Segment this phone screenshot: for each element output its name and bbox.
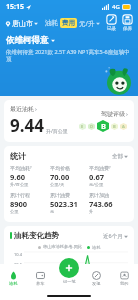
staticText: 9.60 [10, 172, 25, 182]
staticText: 15:15 [6, 2, 24, 12]
button[interactable]: 发现 [82, 264, 110, 292]
button[interactable]: 近6个月 [103, 232, 128, 240]
button[interactable]: Add [59, 258, 79, 278]
staticText: 累计行程 [10, 192, 30, 198]
button[interactable]: 油耗 [0, 264, 27, 292]
staticText: 0.67 [89, 172, 104, 182]
staticText: 743.66 [89, 199, 113, 209]
staticText: 发现 [92, 281, 101, 286]
button[interactable]: 养车 [27, 264, 54, 292]
staticText: 平均油费 [89, 165, 109, 171]
staticText: 累计加油 [89, 192, 109, 198]
staticText: ? [109, 165, 111, 170]
staticText: 唐山市 [12, 19, 33, 28]
staticText: 全部 [112, 153, 123, 160]
staticText: 油耗 [45, 19, 58, 27]
button[interactable]: 费用 [62, 19, 75, 27]
staticText: 元 [50, 209, 55, 214]
staticText: ? [30, 165, 32, 170]
staticText: 我的 [120, 281, 129, 286]
staticText: 保养 [123, 26, 132, 32]
staticText: 元/升 [79, 19, 95, 28]
button[interactable]: Maintenance [122, 14, 133, 32]
staticText: B [101, 121, 106, 131]
staticText: › [126, 110, 128, 118]
staticText: 统计 [10, 151, 26, 161]
staticText: 油耗 [9, 281, 18, 286]
staticText: 70.00 [50, 172, 70, 182]
staticText: 5023.31 [50, 199, 78, 209]
button[interactable]: 依维柯得意 [6, 35, 132, 46]
button[interactable]: 唐山市 [5, 19, 40, 28]
staticText: 依维柯得意 2021款 2.5T A39 NP1高车5-6座短轴中顶 [6, 48, 132, 63]
staticText: E [81, 124, 84, 129]
staticText: D [90, 124, 93, 129]
staticText: B [113, 124, 116, 129]
staticText: 升/百公里 [46, 128, 68, 135]
button[interactable]: 我的 [110, 264, 138, 292]
staticText: 8900 [10, 199, 28, 209]
staticText: 费用 [62, 19, 75, 27]
staticText: 记录 [107, 26, 116, 32]
staticText: 油耗 [92, 245, 101, 250]
staticText: 驾驶评级 [101, 110, 125, 118]
button[interactable]: Add record [106, 14, 117, 32]
staticText: 油耗变化趋势 [14, 231, 59, 240]
staticText: 升/百公里 [10, 182, 29, 188]
staticText: 10.4 [14, 252, 22, 257]
staticText: 9.44 [10, 114, 44, 137]
staticText: › [35, 105, 37, 113]
staticText: 近6个月 [103, 232, 123, 240]
staticText: A [122, 124, 125, 129]
staticText: 公里/天 [50, 182, 65, 188]
staticText: 10.1 [14, 262, 22, 267]
staticText: 最近油耗 [10, 105, 34, 113]
button[interactable]: 驾驶评级 [101, 110, 128, 118]
staticText: 平均价格 [50, 165, 70, 171]
staticText: 唐山市油耗参考-同比 [43, 244, 83, 250]
staticText: 公里 [10, 209, 19, 214]
staticText: 养车 [36, 281, 45, 286]
button[interactable]: 最近油耗 [10, 105, 37, 113]
staticText: 依维柯得意 [6, 35, 49, 46]
staticText: 记一笔 [63, 279, 76, 284]
staticText: 累计油费 [50, 192, 70, 198]
staticText: 元/公里 [89, 182, 104, 188]
staticText: 平均油耗 [10, 165, 30, 171]
staticText: 4G [112, 3, 120, 11]
staticText: 升 [89, 209, 94, 214]
button[interactable]: 全部 [112, 153, 128, 160]
staticText: 9.4 [16, 281, 22, 286]
